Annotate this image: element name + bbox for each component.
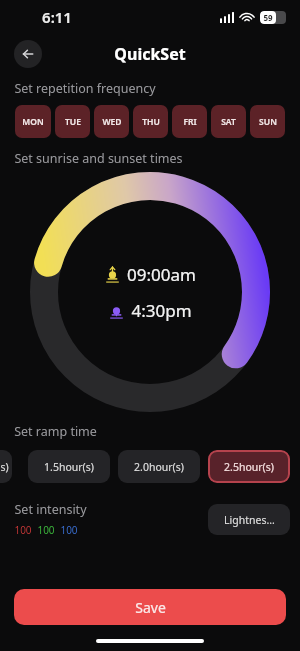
staticText: THU (142, 116, 160, 128)
button[interactable]: MON (15, 105, 51, 138)
staticText: SAT (221, 116, 236, 128)
button[interactable]: Save (14, 589, 286, 625)
button[interactable]: WED (94, 105, 129, 138)
staticText: 1.5hour(s) (44, 460, 94, 474)
staticText: s) (0, 460, 9, 474)
button[interactable]: TUE (55, 105, 90, 138)
staticText: 2.0hour(s) (134, 460, 184, 474)
staticText: 59 (263, 12, 273, 23)
button[interactable]: Back (14, 40, 42, 68)
button[interactable]: SAT (211, 105, 246, 138)
staticText: TUE (65, 116, 81, 128)
staticText: 09:00am (127, 263, 196, 286)
staticText: SUN (259, 116, 277, 128)
button[interactable]: SUN (250, 105, 285, 138)
button[interactable]: Lightnes... (208, 504, 290, 535)
staticText: WED (102, 116, 122, 128)
button[interactable]: FRI (172, 105, 207, 138)
staticText: Set sunrise and sunset times (14, 150, 183, 167)
button[interactable]: 2.5hour(s) (208, 450, 290, 483)
staticText: 100 (37, 523, 55, 537)
staticText: Set ramp time (14, 423, 97, 440)
staticText: 2.5hour(s) (224, 460, 274, 474)
staticText: MON (22, 116, 44, 128)
staticText: 4:30pm (131, 299, 192, 322)
staticText: 100 (60, 523, 78, 537)
button[interactable]: 1.5hour(s) (28, 450, 110, 483)
staticText: 100 (14, 523, 32, 537)
staticText: Save (135, 598, 166, 617)
button[interactable]: THU (133, 105, 168, 138)
staticText: Set repetition frequency (14, 80, 156, 97)
staticText: Lightnes... (224, 513, 275, 527)
staticText: Set intensity (14, 501, 87, 518)
staticText: FRI (183, 116, 197, 128)
button[interactable]: s) (0, 450, 12, 483)
button[interactable]: 2.0hour(s) (118, 450, 200, 483)
staticText: QuickSet (114, 43, 186, 65)
staticText: 6:11 (42, 7, 72, 27)
